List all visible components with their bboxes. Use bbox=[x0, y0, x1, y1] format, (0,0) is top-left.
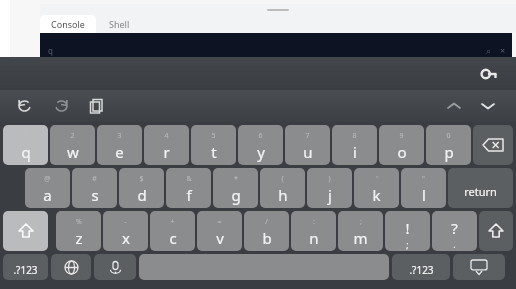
staticText: 6 bbox=[258, 131, 263, 141]
button[interactable]: 3 bbox=[97, 125, 142, 165]
button[interactable]: & bbox=[166, 168, 211, 208]
staticText: return bbox=[464, 184, 497, 199]
staticText: m bbox=[353, 228, 368, 248]
button[interactable]: 1 bbox=[3, 125, 48, 165]
staticText: $ bbox=[139, 174, 144, 184]
button[interactable]: " bbox=[401, 168, 446, 208]
staticText: q bbox=[48, 45, 53, 56]
staticText: v bbox=[216, 228, 224, 248]
staticText: g bbox=[231, 185, 241, 205]
staticText: - bbox=[124, 217, 127, 227]
staticText: c bbox=[169, 228, 177, 248]
staticText: ? bbox=[451, 218, 458, 238]
button[interactable]: 4 bbox=[144, 125, 189, 165]
button[interactable]: 6 bbox=[238, 125, 283, 165]
staticText: l bbox=[422, 185, 426, 205]
staticText: w bbox=[67, 142, 79, 162]
staticText: : bbox=[313, 217, 315, 227]
button[interactable]: Backspace bbox=[473, 125, 513, 165]
staticText: 8 bbox=[352, 131, 357, 141]
staticText: 0 bbox=[446, 131, 451, 141]
button[interactable]: # bbox=[72, 168, 117, 208]
staticText: o bbox=[397, 142, 407, 162]
staticText: a bbox=[43, 185, 52, 205]
button[interactable]: Next bbox=[474, 92, 502, 120]
staticText: y bbox=[257, 142, 265, 162]
button[interactable]: .?123 bbox=[392, 254, 450, 280]
staticText: u bbox=[303, 142, 313, 162]
button[interactable]: 0 bbox=[426, 125, 471, 165]
staticText: k bbox=[372, 185, 381, 205]
staticText: Console bbox=[51, 18, 85, 30]
button[interactable]: ) bbox=[307, 168, 352, 208]
button[interactable]: Redo bbox=[48, 93, 74, 119]
staticText: p bbox=[444, 142, 454, 162]
button[interactable]: Shift bbox=[3, 211, 48, 251]
staticText: 9 bbox=[399, 131, 404, 141]
button[interactable]: % bbox=[56, 211, 101, 251]
button[interactable]: 7 bbox=[285, 125, 330, 165]
button[interactable]: / bbox=[244, 211, 289, 251]
button[interactable]: Space bbox=[139, 254, 389, 280]
staticText: ' bbox=[376, 174, 378, 184]
button[interactable]: Previous bbox=[440, 92, 468, 120]
button[interactable]: Change language bbox=[51, 254, 91, 280]
button[interactable]: Undo bbox=[12, 93, 38, 119]
staticText: b bbox=[262, 228, 272, 248]
button[interactable]: Shell bbox=[96, 15, 142, 33]
staticText: = bbox=[217, 217, 222, 227]
staticText: ( bbox=[281, 174, 284, 184]
staticText: 4 bbox=[164, 131, 169, 141]
staticText: d bbox=[137, 185, 147, 205]
button[interactable]: * bbox=[213, 168, 258, 208]
button[interactable]: 2 bbox=[50, 125, 95, 165]
staticText: ! bbox=[405, 218, 410, 238]
button[interactable]: = bbox=[197, 211, 242, 251]
staticText: × bbox=[500, 44, 506, 56]
button[interactable]: return bbox=[448, 168, 513, 208]
button[interactable]: Passwords bbox=[476, 61, 502, 87]
button[interactable]: 9 bbox=[379, 125, 424, 165]
staticText: ; bbox=[360, 217, 362, 227]
button[interactable]: Console bbox=[40, 15, 96, 33]
button[interactable]: ! bbox=[385, 211, 430, 251]
button[interactable]: ; bbox=[338, 211, 383, 251]
staticText: .?123 bbox=[409, 263, 434, 277]
button[interactable]: : bbox=[291, 211, 336, 251]
staticText: n bbox=[309, 228, 319, 248]
staticText: z bbox=[75, 228, 83, 248]
staticText: % bbox=[76, 217, 82, 227]
staticText: q bbox=[21, 142, 31, 162]
button[interactable]: Hide keyboard bbox=[453, 254, 505, 280]
button[interactable]: $ bbox=[119, 168, 164, 208]
staticText: t bbox=[211, 142, 217, 162]
button[interactable]: 8 bbox=[332, 125, 377, 165]
staticText: . bbox=[453, 238, 456, 250]
staticText: 3 bbox=[117, 131, 122, 141]
staticText: " bbox=[422, 174, 425, 184]
staticText: .?123 bbox=[13, 263, 38, 277]
staticText: @ bbox=[44, 174, 51, 184]
button[interactable]: 5 bbox=[191, 125, 236, 165]
button[interactable]: ' bbox=[354, 168, 399, 208]
staticText: Shell bbox=[109, 18, 130, 30]
staticText: e bbox=[115, 142, 124, 162]
staticText: / bbox=[265, 217, 268, 227]
staticText: ⌕ bbox=[486, 47, 492, 56]
staticText: + bbox=[170, 217, 175, 227]
staticText: & bbox=[186, 174, 192, 184]
button[interactable]: Shift bbox=[479, 211, 513, 251]
staticText: s bbox=[91, 185, 99, 205]
button[interactable]: - bbox=[103, 211, 148, 251]
staticText: # bbox=[92, 174, 97, 184]
staticText: j bbox=[328, 185, 332, 205]
button[interactable]: ? bbox=[432, 211, 477, 251]
staticText: * bbox=[234, 174, 238, 184]
button[interactable]: Voice input bbox=[94, 254, 136, 280]
staticText: h bbox=[278, 185, 288, 205]
button[interactable]: .?123 bbox=[3, 254, 48, 280]
button[interactable]: + bbox=[150, 211, 195, 251]
button[interactable]: @ bbox=[25, 168, 70, 208]
button[interactable]: Paste bbox=[84, 93, 110, 119]
button[interactable]: ( bbox=[260, 168, 305, 208]
